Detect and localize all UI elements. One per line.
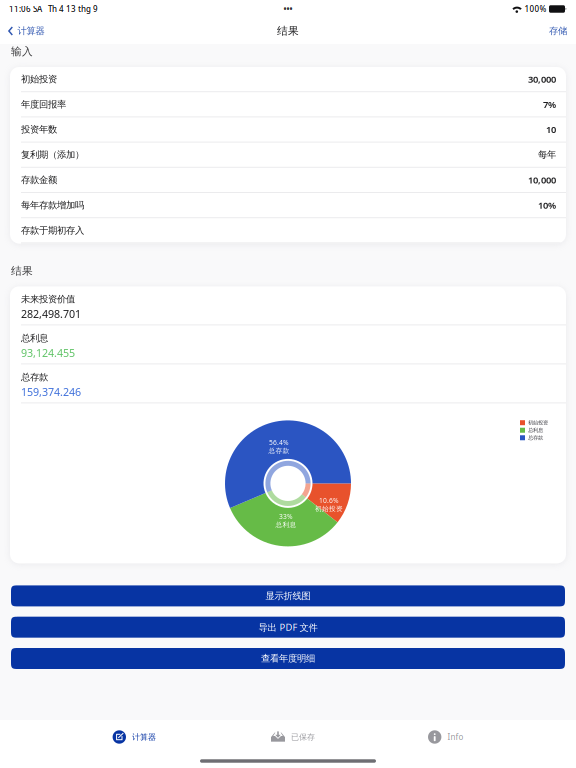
staticText: 282,498.701	[21, 307, 81, 321]
staticText: 10	[546, 123, 556, 136]
staticText: 查看年度明细	[261, 653, 315, 664]
staticText: 结果	[11, 264, 33, 277]
staticText: 年度回报率	[21, 99, 66, 110]
staticText: 未来投资价值	[21, 293, 75, 305]
staticText: 33%	[279, 512, 293, 521]
button[interactable]: 已保存	[271, 720, 315, 754]
staticText: 10.6%	[319, 496, 339, 505]
staticText: 计算器	[17, 25, 44, 37]
button[interactable]: 年度回报率	[10, 92, 566, 117]
staticText: 总存款	[268, 447, 289, 455]
staticText: 存款于期初存入	[21, 225, 84, 236]
button[interactable]: 存款于期初存入	[10, 218, 566, 243]
button[interactable]: Info	[428, 720, 463, 754]
staticText: 每年存款增加吗	[21, 199, 84, 211]
staticText: •••	[283, 4, 292, 14]
staticText: 100%	[524, 4, 546, 14]
staticText: 每年	[538, 149, 556, 160]
staticText: 总利息	[528, 427, 543, 434]
staticText: 10,000	[528, 174, 556, 186]
staticText: 159,374.246	[21, 385, 81, 399]
button[interactable]: 导出 PDF 文件	[11, 617, 565, 638]
button[interactable]: 存款金额	[10, 168, 566, 193]
staticText: 存储	[549, 25, 567, 37]
button[interactable]: 计算器	[0, 18, 50, 44]
button[interactable]: 存储	[539, 18, 576, 44]
staticText: 导出 PDF 文件	[258, 621, 317, 633]
staticText: 初始投资	[528, 419, 548, 426]
staticText: 计算器	[132, 732, 156, 742]
staticText: 显示折线图	[265, 590, 310, 602]
staticText: 总利息	[275, 521, 296, 529]
button[interactable]: 计算器	[113, 720, 156, 754]
staticText: 10%	[538, 199, 556, 211]
button[interactable]: 复利期（添加）	[10, 143, 566, 168]
staticText: 初始投资	[21, 73, 57, 85]
staticText: 结果	[277, 24, 299, 37]
button[interactable]: 查看年度明细	[11, 648, 565, 669]
staticText: Info	[447, 732, 463, 742]
staticText: 总存款	[528, 434, 543, 441]
staticText: 7%	[543, 98, 556, 110]
staticText: 复利期（添加）	[21, 149, 84, 160]
button[interactable]: 每年存款增加吗	[10, 193, 566, 218]
staticText: 总存款	[21, 371, 48, 383]
staticText: 存款金额	[21, 174, 57, 186]
button[interactable]: 初始投资	[10, 67, 566, 92]
staticText: 投资年数	[21, 124, 57, 135]
staticText: 56.4%	[269, 438, 289, 447]
staticText: 初始投资	[315, 505, 343, 513]
staticText: 11:06 SA	[9, 4, 42, 14]
staticText: 93,124.455	[21, 346, 75, 360]
staticText: Th 4 13 thg 9	[42, 4, 98, 14]
staticText: 30,000	[528, 73, 556, 85]
button[interactable]: 投资年数	[10, 117, 566, 143]
staticText: 输入	[11, 45, 33, 58]
button[interactable]: 显示折线图	[11, 585, 565, 606]
staticText: 总利息	[21, 332, 48, 344]
staticText: 已保存	[291, 732, 315, 742]
